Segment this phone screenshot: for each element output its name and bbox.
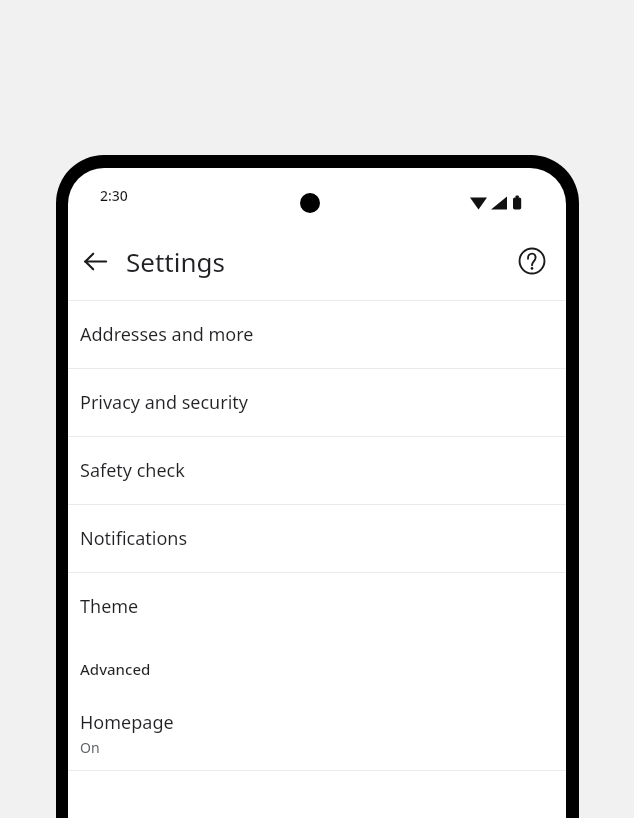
staticText: Privacy and security: [80, 390, 248, 415]
staticText: Settings: [126, 244, 225, 279]
staticText: 2:30: [100, 186, 128, 205]
button[interactable]: Help: [510, 239, 554, 283]
staticText: Addresses and more: [80, 322, 254, 347]
button[interactable]: Safety check: [68, 437, 566, 504]
button[interactable]: Privacy and security: [68, 369, 566, 436]
staticText: On: [80, 738, 100, 757]
button[interactable]: Theme: [68, 573, 566, 640]
button[interactable]: Homepage: [68, 698, 566, 770]
staticText: Homepage: [80, 710, 174, 735]
staticText: Theme: [80, 594, 139, 619]
staticText: Advanced: [80, 659, 151, 679]
staticText: Notifications: [80, 526, 188, 551]
button[interactable]: Notifications: [68, 505, 566, 572]
button[interactable]: Back: [71, 237, 119, 285]
button[interactable]: Addresses and more: [68, 301, 566, 368]
staticText: Safety check: [80, 458, 185, 483]
